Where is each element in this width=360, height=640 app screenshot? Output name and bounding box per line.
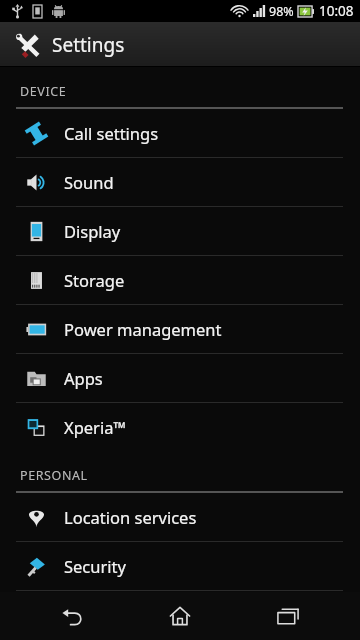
staticText: Xperia™ (64, 416, 127, 438)
button[interactable]: Recent apps (252, 592, 324, 640)
staticText: Sound (64, 171, 114, 193)
staticText: 98% (269, 3, 294, 20)
staticText: PERSONAL (20, 467, 88, 484)
button[interactable]: Home (144, 592, 216, 640)
button[interactable]: Apps (0, 354, 360, 402)
button[interactable]: Power management (0, 305, 360, 353)
button[interactable]: Security (0, 542, 360, 590)
staticText: Power management (64, 318, 222, 340)
staticText: Storage (64, 269, 125, 291)
staticText: Location services (64, 506, 197, 528)
staticText: Security (64, 555, 126, 577)
staticText: Apps (64, 367, 103, 389)
staticText: Settings (52, 32, 125, 58)
staticText: Call settings (64, 122, 159, 144)
button[interactable]: Xperia™ (0, 403, 360, 451)
button[interactable]: Display (0, 207, 360, 255)
staticText: Display (64, 220, 121, 242)
button[interactable]: Location services (0, 493, 360, 541)
button[interactable]: Sound (0, 158, 360, 206)
button[interactable]: Call settings (0, 109, 360, 157)
button[interactable]: Back (36, 592, 108, 640)
button[interactable]: Storage (0, 256, 360, 304)
staticText: DEVICE (20, 83, 67, 100)
staticText: 10:08 (319, 2, 354, 20)
